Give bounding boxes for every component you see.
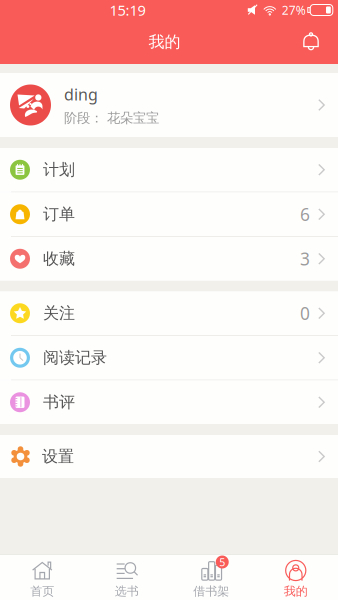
staticText: 阅读记录: [43, 348, 107, 368]
staticText: 15:19: [109, 0, 145, 20]
staticText: 27%: [282, 2, 306, 18]
button[interactable]: 阅读记录: [0, 336, 338, 379]
button[interactable]: 书评: [0, 380, 338, 424]
staticText: 书评: [43, 392, 75, 412]
staticText: 首页: [30, 584, 54, 599]
staticText: 设置: [42, 447, 74, 466]
button[interactable]: 设置: [0, 435, 338, 478]
button[interactable]: 首页: [0, 555, 84, 600]
button[interactable]: 5: [169, 555, 253, 600]
button[interactable]: 我的: [253, 555, 338, 600]
button[interactable]: 选书: [84, 555, 169, 600]
staticText: 借书架: [193, 584, 229, 599]
button[interactable]: 订单: [0, 192, 338, 236]
staticText: 订单: [43, 204, 75, 224]
staticText: ding: [64, 84, 98, 105]
staticText: 5: [219, 555, 225, 569]
staticText: 关注: [43, 303, 75, 323]
staticText: 选书: [115, 584, 139, 599]
button[interactable]: ding: [0, 73, 338, 137]
button[interactable]: 收藏: [0, 237, 338, 280]
button[interactable]: Notifications: [293, 20, 329, 64]
button[interactable]: 计划: [0, 148, 338, 191]
staticText: 3: [300, 247, 310, 270]
button[interactable]: 关注: [0, 291, 338, 335]
staticText: 我的: [284, 584, 308, 599]
staticText: 收藏: [43, 249, 75, 269]
staticText: 阶段： 花朵宝宝: [64, 110, 159, 126]
staticText: 我的: [148, 32, 180, 52]
staticText: 6: [300, 203, 310, 226]
staticText: 计划: [43, 160, 75, 180]
staticText: 0: [300, 302, 310, 325]
